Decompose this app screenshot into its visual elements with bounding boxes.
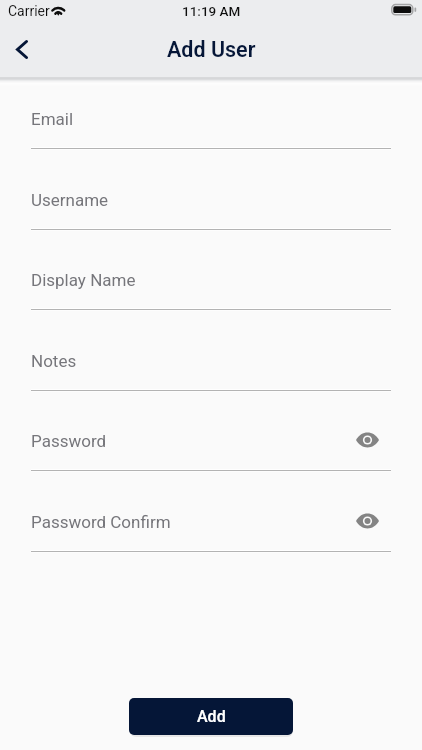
staticText: Password [31,431,107,451]
button[interactable]: Add [129,698,293,735]
staticText: Carrier [8,3,50,19]
button[interactable]: Show password [349,422,385,458]
staticText: Email [31,109,74,129]
button[interactable]: Back [0,27,44,71]
staticText: Add User [167,37,256,62]
button[interactable]: Show password [349,503,385,539]
staticText: Display Name [31,270,136,290]
staticText: Add [197,707,226,726]
staticText: 11:19 AM [182,3,241,19]
staticText: Notes [31,351,77,371]
staticText: Username [31,190,109,210]
staticText: Password Confirm [31,512,171,532]
